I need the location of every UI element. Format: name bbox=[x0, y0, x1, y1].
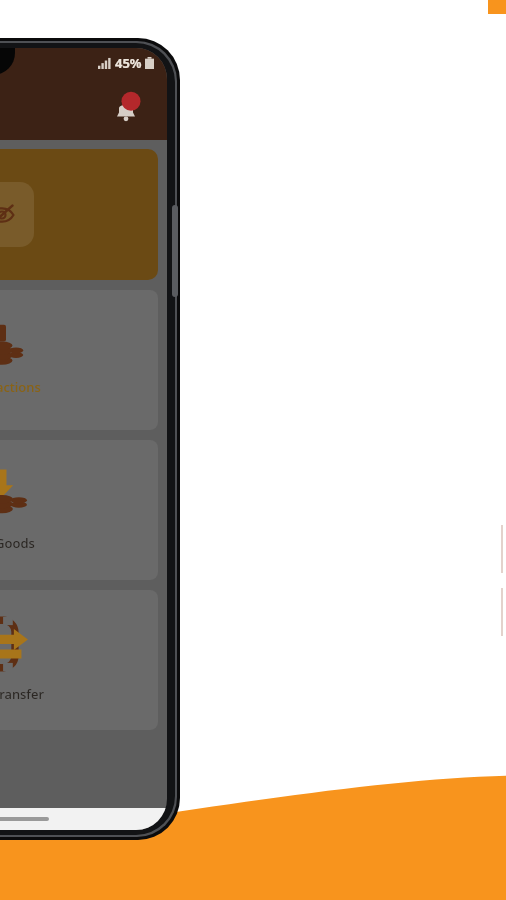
staticText: 45% bbox=[115, 54, 142, 72]
staticText: Transactions bbox=[0, 378, 41, 396]
staticText: Buy Goods bbox=[0, 534, 35, 552]
button[interactable] bbox=[0, 149, 158, 280]
button[interactable]: Transactions bbox=[0, 290, 158, 430]
button[interactable]: Notifications bbox=[109, 92, 143, 126]
button[interactable]: Cash Transfer bbox=[0, 590, 158, 730]
button[interactable]: Buy Goods bbox=[0, 440, 158, 580]
staticText: Cash Transfer bbox=[0, 685, 44, 703]
